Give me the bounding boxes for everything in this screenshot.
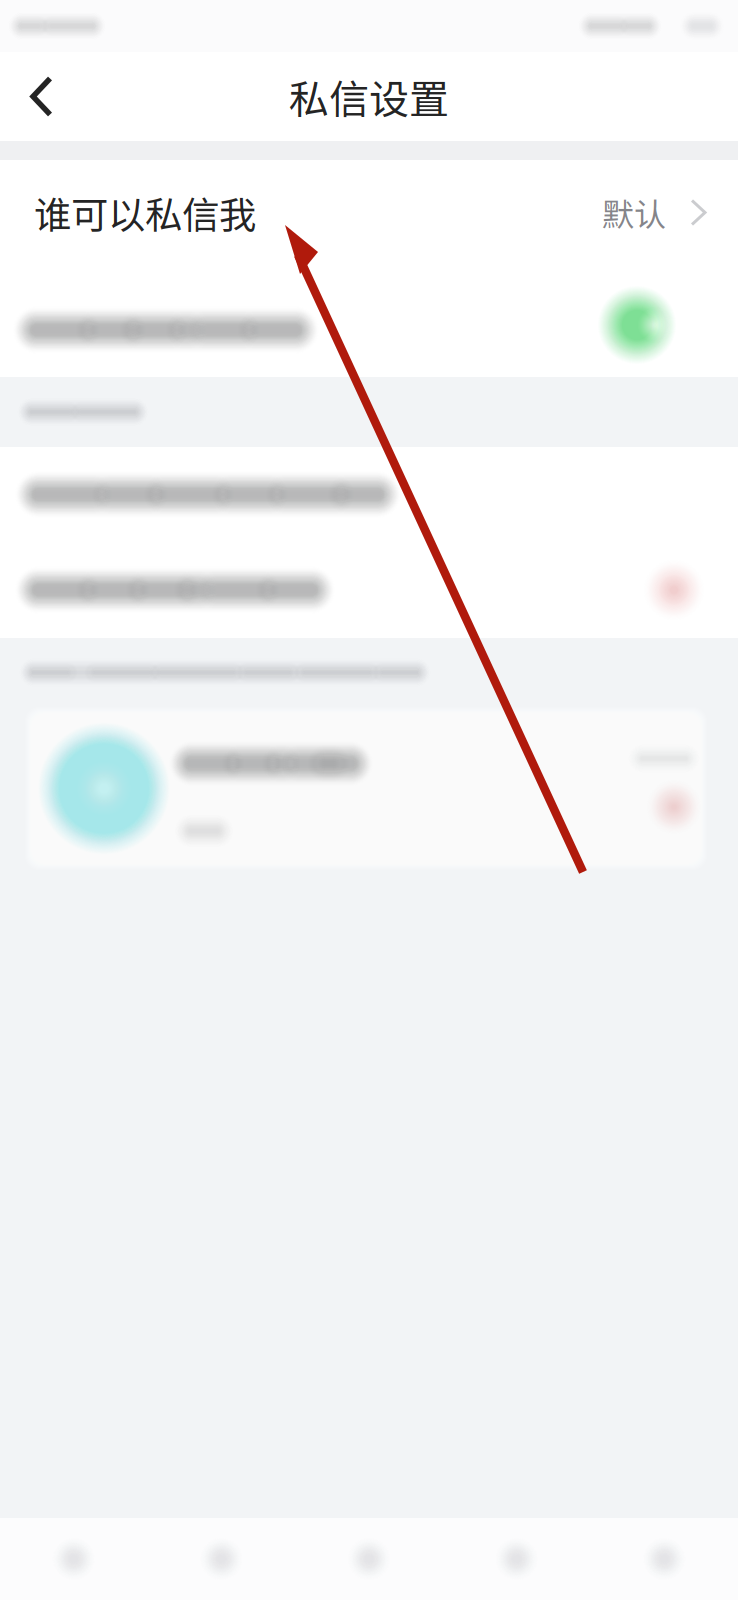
button[interactable]: 标签 — [148, 1518, 295, 1600]
button[interactable]: 标签 — [443, 1518, 590, 1600]
button[interactable]: 标签 — [0, 1518, 148, 1600]
staticText: 谁可以私信我 — [34, 185, 256, 240]
button[interactable]: 标签 — [295, 1518, 443, 1600]
button[interactable]: 返回 — [0, 52, 83, 140]
staticText: 私信设置 — [289, 67, 449, 125]
staticText: 默认 — [602, 189, 666, 236]
button[interactable]: 谁可以私信我 — [0, 160, 738, 265]
button[interactable] — [0, 707, 738, 870]
button[interactable]: 标签 — [590, 1518, 738, 1600]
